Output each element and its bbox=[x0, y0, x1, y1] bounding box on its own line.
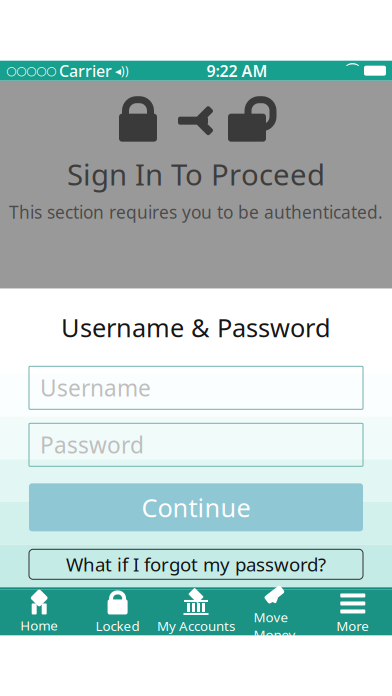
staticText: Home bbox=[20, 616, 58, 634]
staticText: Carrier bbox=[59, 60, 112, 81]
staticText: Password bbox=[40, 430, 144, 460]
staticText: This section requires you to be authenti… bbox=[9, 201, 383, 224]
button[interactable]: Locked bbox=[78, 587, 157, 638]
staticText: Username bbox=[40, 373, 151, 403]
staticText: ◂)) bbox=[115, 63, 129, 79]
staticText: Username & Password bbox=[61, 311, 331, 344]
staticText: Sign In To Proceed bbox=[67, 155, 325, 194]
staticText: My Accounts bbox=[157, 617, 235, 635]
button[interactable]: My Accounts bbox=[157, 587, 235, 638]
button[interactable]: Continue bbox=[29, 483, 363, 531]
staticText: Continue bbox=[141, 490, 250, 524]
staticText: More bbox=[336, 617, 369, 635]
staticText: 9:22 AM bbox=[206, 60, 267, 81]
staticText: Locked bbox=[96, 617, 140, 635]
button[interactable]: More bbox=[314, 587, 392, 638]
staticText: What if I forgot my password? bbox=[66, 552, 326, 577]
button[interactable]: What if I forgot my password? bbox=[29, 549, 363, 579]
staticText: Move Money bbox=[253, 608, 295, 643]
staticText: ○○○○○ bbox=[6, 64, 56, 77]
button[interactable]: Move Money bbox=[235, 578, 314, 646]
staticText: ⌒ bbox=[345, 62, 360, 80]
button[interactable]: Home bbox=[0, 587, 78, 637]
